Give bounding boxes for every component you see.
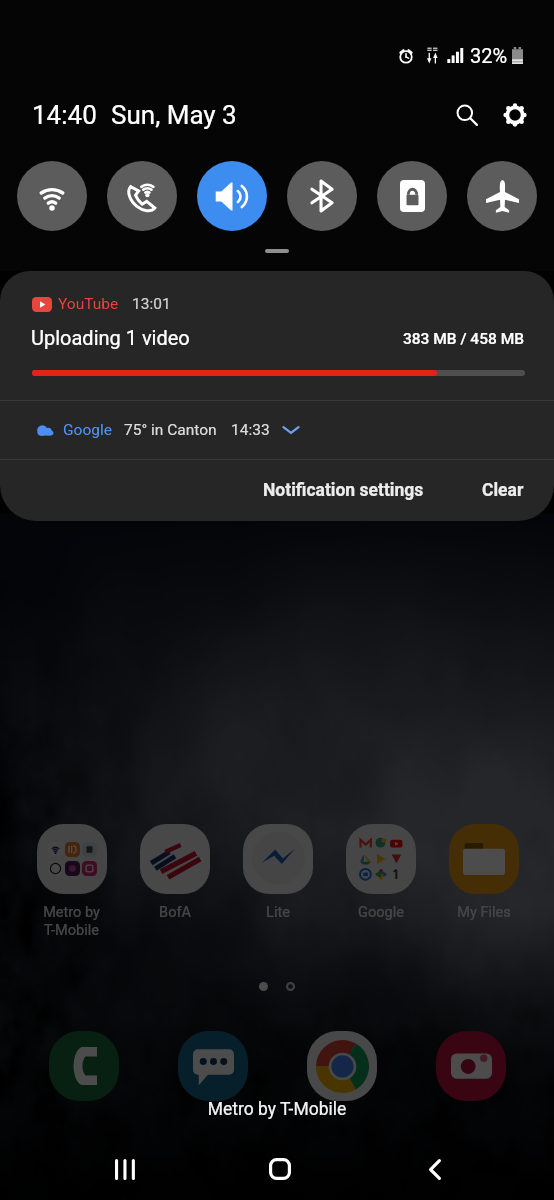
button[interactable]: Chrome — [277, 1030, 406, 1102]
staticText: 14:33 — [231, 421, 270, 439]
button[interactable]: Notification settings — [253, 466, 434, 515]
button[interactable]: BofA — [123, 824, 226, 921]
staticText: Metro by T-Mobile — [43, 904, 100, 939]
staticText: 32% — [470, 44, 508, 67]
button[interactable]: Clear — [472, 466, 534, 515]
button[interactable]: My Files — [432, 824, 535, 921]
staticText: Google — [358, 904, 404, 921]
staticText: Notification settings — [263, 480, 424, 501]
staticText: 14:40 — [32, 100, 97, 130]
button[interactable]: Wi-Fi — [17, 161, 87, 231]
button[interactable]: Settings — [496, 96, 534, 134]
staticText: Sun, May 3 — [111, 100, 237, 130]
button[interactable]: Device lock — [377, 161, 447, 231]
button[interactable]: Wi-Fi calling — [107, 161, 177, 231]
button[interactable]: Home — [240, 1129, 320, 1200]
button[interactable]: YouTube — [0, 271, 554, 400]
button[interactable]: Airplane mode — [467, 161, 537, 231]
staticText: Clear — [482, 480, 524, 501]
staticText: Google — [63, 421, 112, 439]
staticText: 383 MB / 458 MB — [403, 330, 524, 348]
staticText: YouTube — [58, 295, 119, 313]
staticText: BofA — [159, 904, 191, 921]
staticText: My Files — [457, 904, 511, 921]
button[interactable]: Bluetooth — [287, 161, 357, 231]
button[interactable]: Sound — [197, 161, 267, 231]
staticText: Lite — [266, 904, 290, 921]
button[interactable]: Messages — [148, 1030, 277, 1102]
button[interactable]: Back — [395, 1129, 475, 1200]
staticText: Uploading 1 video — [31, 326, 190, 349]
button[interactable]: Google — [0, 401, 554, 459]
button[interactable]: Lite — [226, 824, 329, 921]
button[interactable]: Metro by T-Mobile — [20, 824, 123, 939]
button[interactable]: Search — [448, 96, 486, 134]
button[interactable]: Camera — [406, 1030, 535, 1102]
staticText: Metro by T-Mobile — [0, 1099, 554, 1120]
staticText: 13:01 — [132, 295, 171, 313]
button[interactable]: Phone — [19, 1030, 148, 1102]
button[interactable]: Recents — [85, 1129, 165, 1200]
staticText: 75° in Canton — [124, 421, 217, 439]
button[interactable]: Google — [329, 824, 432, 921]
